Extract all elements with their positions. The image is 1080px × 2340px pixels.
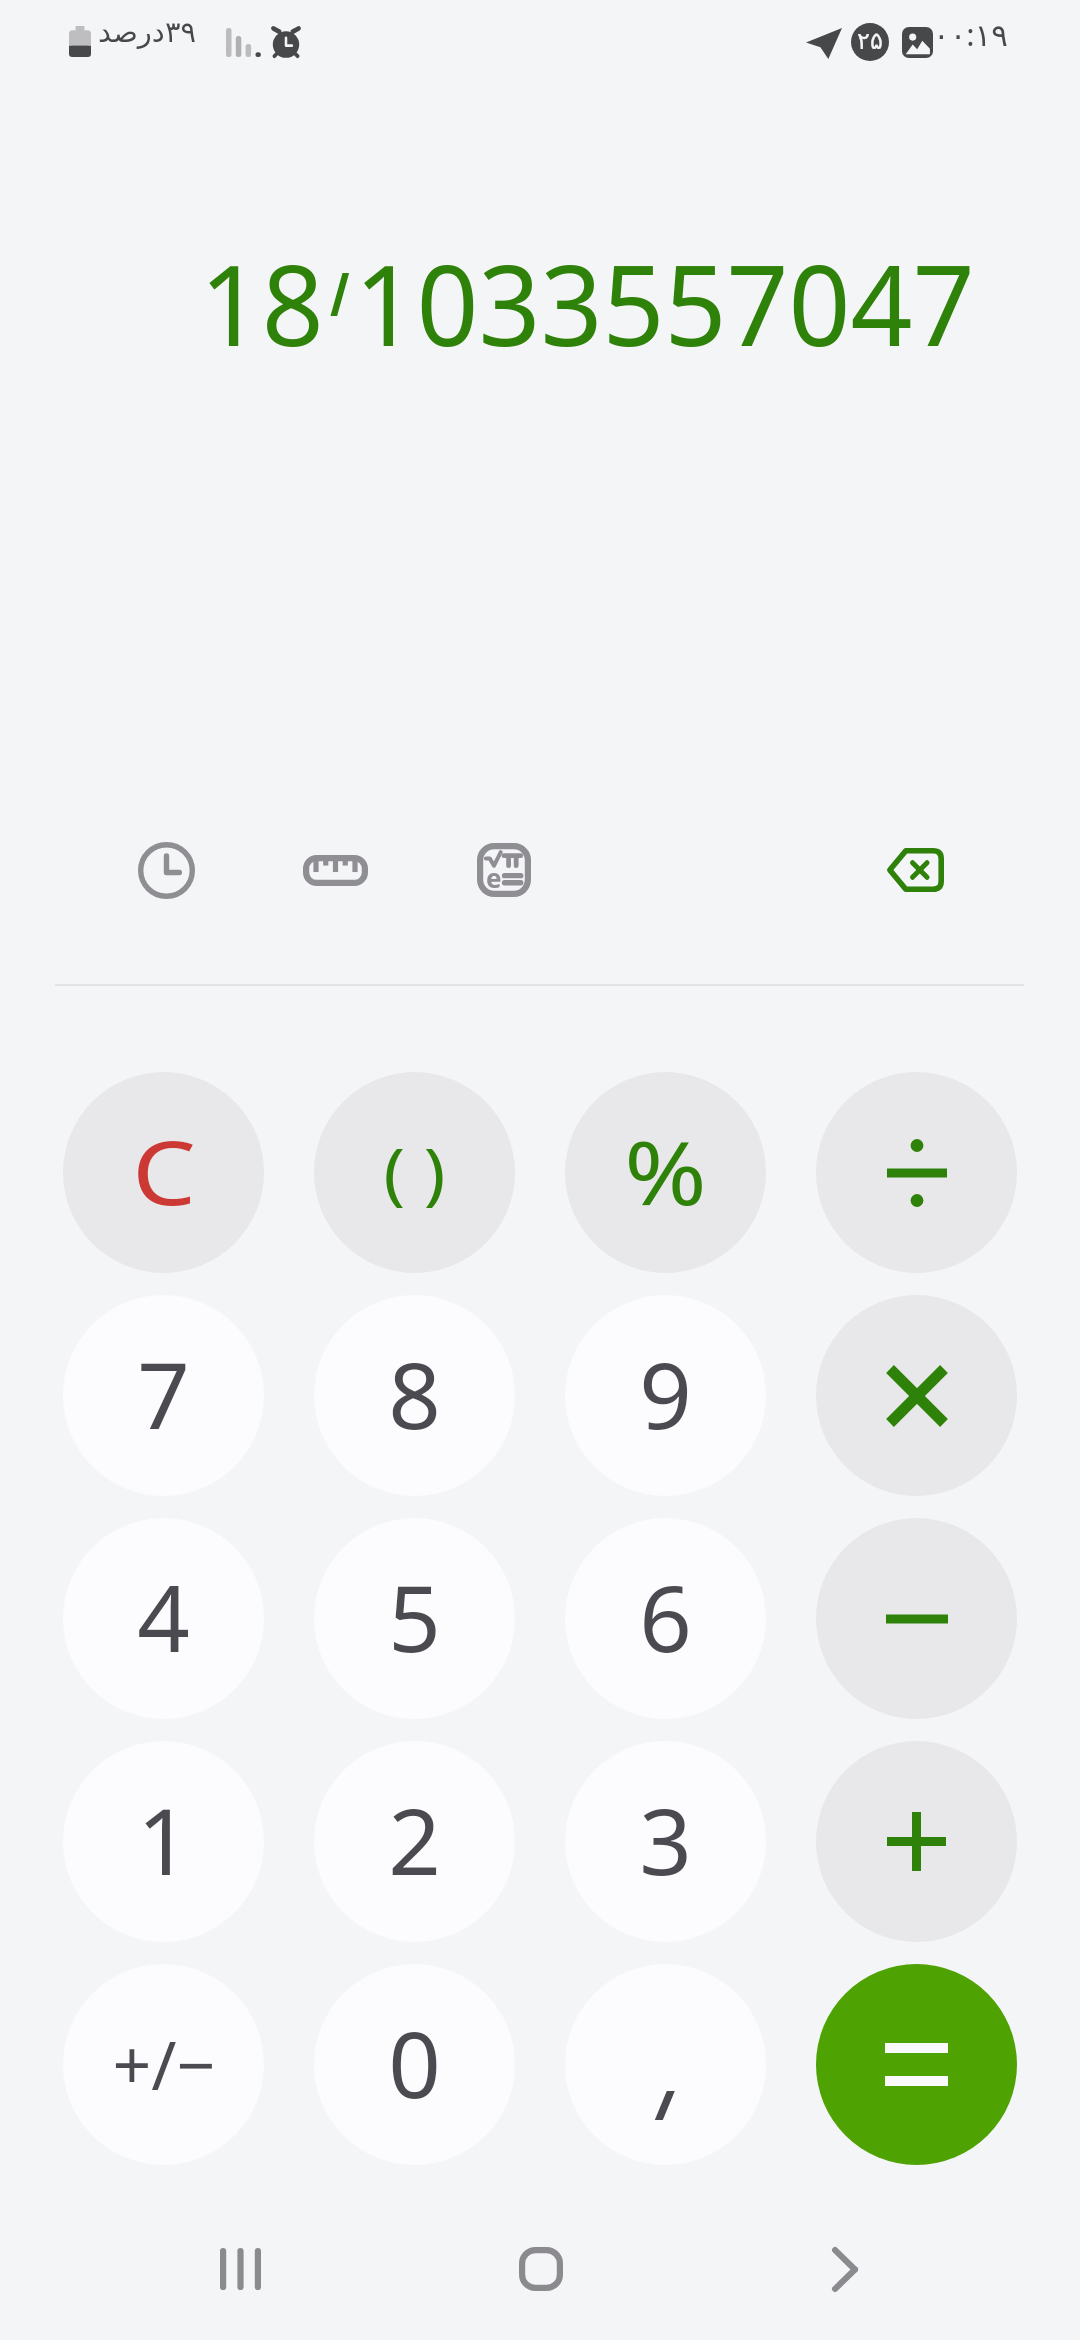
button[interactable]: 3 [565, 1741, 766, 1942]
staticText: 0 [388, 2000, 441, 2125]
button[interactable]: Backspace [861, 816, 969, 924]
button[interactable]: History [112, 816, 220, 924]
button[interactable]: ( ) [314, 1072, 515, 1273]
button[interactable]: 4 [63, 1518, 264, 1719]
button[interactable]: Unit converter [281, 816, 389, 924]
staticText: 18 [200, 226, 324, 356]
staticText: 1 [137, 1777, 190, 1902]
staticText: 7 [137, 1331, 190, 1456]
staticText: +/− [112, 2017, 216, 2110]
button[interactable]: Back [785, 2228, 905, 2310]
staticText: 2 [388, 1777, 441, 1902]
button[interactable]: Divide [816, 1072, 1017, 1273]
button[interactable]: Recent apps [180, 2228, 300, 2310]
button[interactable]: 7 [63, 1295, 264, 1496]
button[interactable]: Add [816, 1741, 1017, 1942]
staticText: ۳۹ [165, 15, 197, 49]
staticText: C [132, 1111, 196, 1231]
button[interactable]: 6 [565, 1518, 766, 1719]
button[interactable]: C [63, 1072, 264, 1273]
staticText: ( ) [383, 1124, 446, 1217]
staticText: 5 [388, 1554, 441, 1679]
button[interactable]: Equals [816, 1964, 1017, 2165]
button[interactable]: Multiply [816, 1295, 1017, 1496]
button[interactable]: Home [481, 2228, 601, 2310]
button[interactable]: Scientific calculator [450, 816, 558, 924]
button[interactable]: 8 [314, 1295, 515, 1496]
staticText: 1033557047 [354, 226, 975, 356]
staticText: 3 [639, 1777, 692, 1902]
button[interactable]: 0 [314, 1964, 515, 2165]
button[interactable]: % [565, 1072, 766, 1273]
staticText: % [624, 1112, 707, 1230]
staticText: 8 [388, 1331, 441, 1456]
staticText: ۲۵ [857, 27, 883, 55]
staticText: 9 [639, 1331, 692, 1456]
button[interactable]: +/− [63, 1964, 264, 2165]
button[interactable]: 5 [314, 1518, 515, 1719]
staticText: e [486, 860, 502, 895]
staticText: درصد [98, 15, 165, 49]
button[interactable]: 9 [565, 1295, 766, 1496]
button[interactable]: 1 [63, 1741, 264, 1942]
button[interactable]: 2 [314, 1741, 515, 1942]
button[interactable]: Subtract [816, 1518, 1017, 1719]
button[interactable]: Decimal point [565, 1964, 766, 2165]
staticText: ۰۰:۱۹ [933, 13, 1008, 55]
staticText: 6 [639, 1554, 692, 1679]
staticText: 4 [137, 1554, 190, 1679]
